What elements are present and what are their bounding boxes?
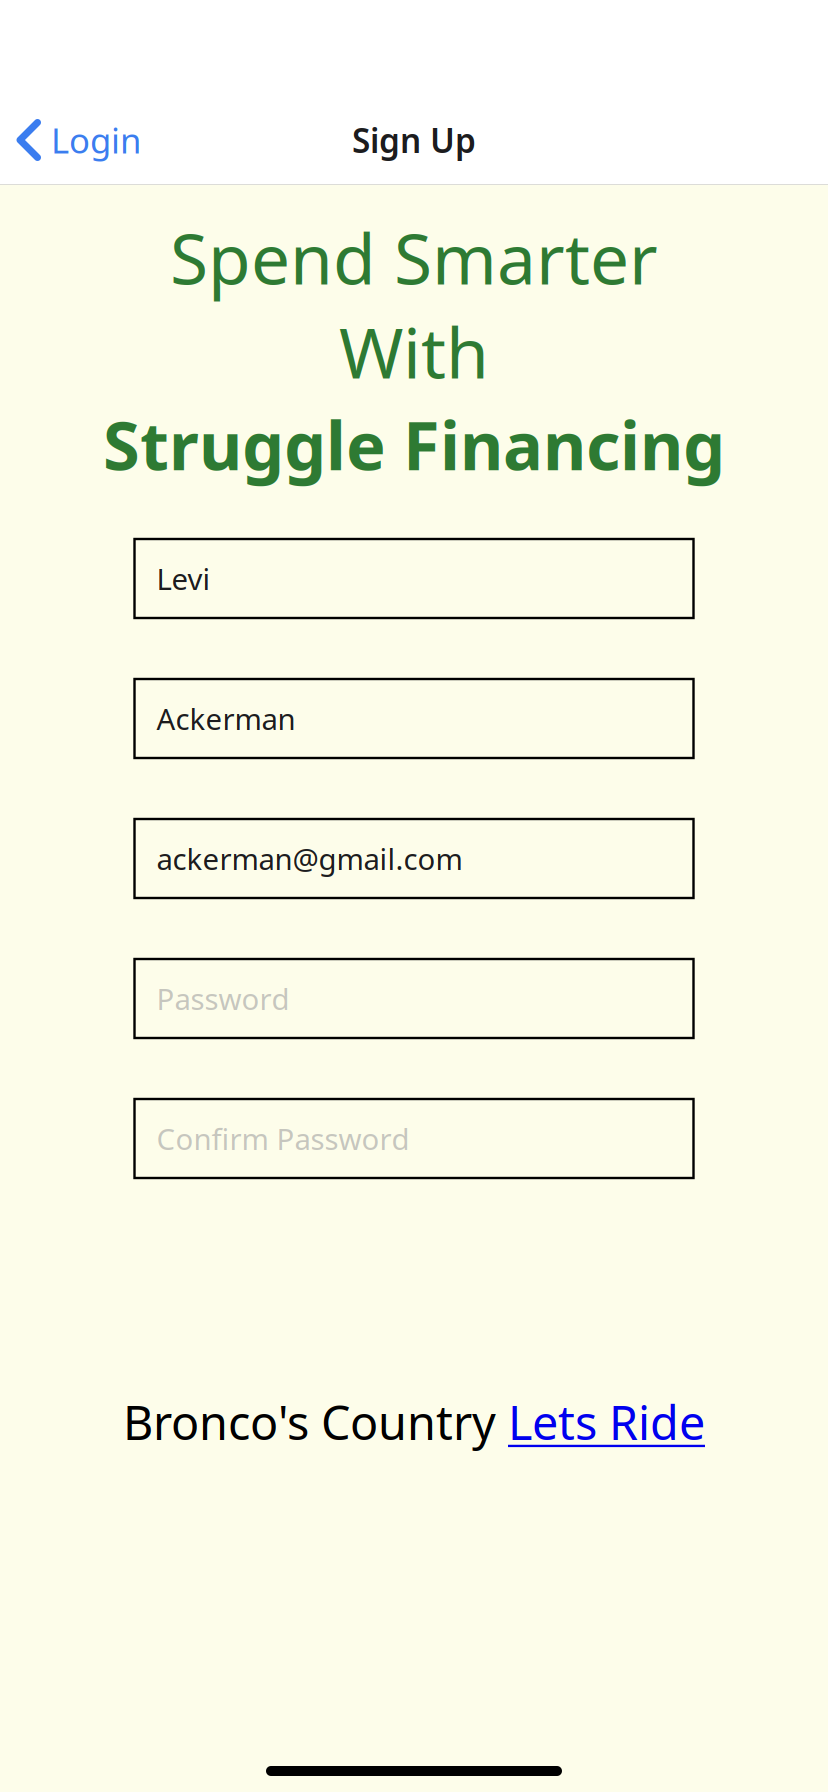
staticText: Ackerman [156,699,295,738]
button[interactable]: Ackerman [134,679,693,758]
button[interactable]: Levi [134,539,693,618]
staticText: Spend Smarter [170,211,658,304]
staticText: Password [156,979,289,1018]
staticText: Bronco's Country [123,1391,508,1453]
button[interactable]: Back to Login [0,110,266,170]
staticText: ackerman@gmail.com [156,839,462,878]
staticText: Struggle Financing [103,400,725,489]
staticText: Levi [156,559,210,598]
button[interactable]: ackerman@gmail.com [134,819,693,898]
button[interactable]: Lets Ride [508,1391,705,1453]
button[interactable]: Confirm Password [134,1099,693,1178]
staticText: Sign Up [352,118,476,162]
staticText: Login [51,117,141,163]
staticText: Lets Ride [508,1391,705,1453]
button[interactable]: Password [134,959,693,1038]
staticText: Confirm Password [156,1119,409,1158]
staticText: With [339,305,489,398]
